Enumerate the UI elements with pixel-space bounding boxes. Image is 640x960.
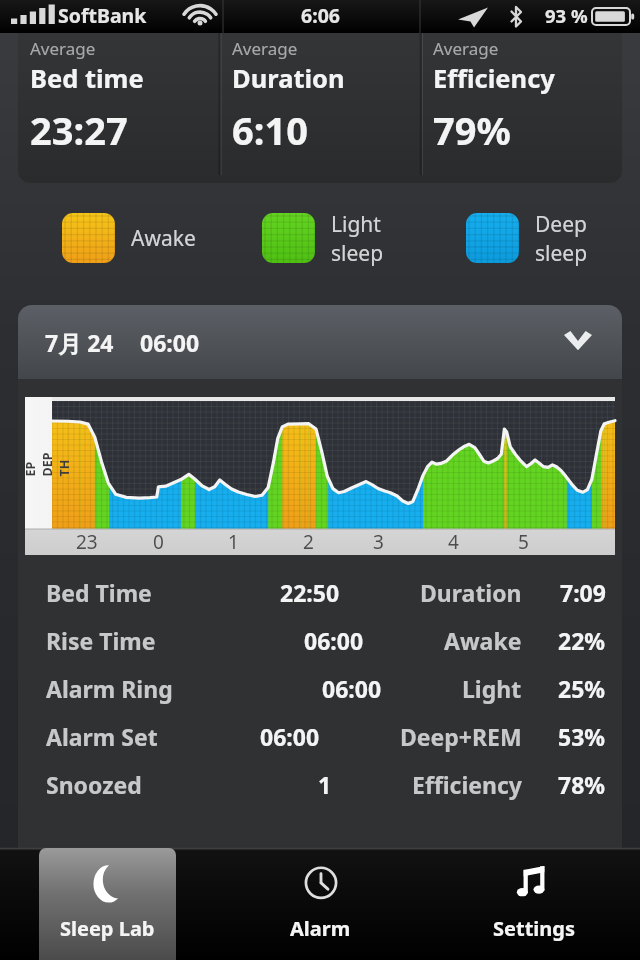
staticText: 1 — [318, 769, 332, 800]
staticText: SoftBank — [58, 2, 147, 29]
button[interactable]: 7月 24 — [18, 305, 622, 379]
staticText: Bed Time — [46, 577, 152, 608]
staticText: 25% — [558, 673, 606, 704]
staticText: Alarm Ring — [46, 673, 173, 704]
staticText: 06:00 — [140, 327, 200, 358]
staticText: Duration — [420, 577, 522, 608]
staticText: 7:09 — [560, 577, 606, 608]
staticText: Sleep Lab — [60, 915, 155, 942]
staticText: 22% — [558, 625, 606, 656]
button[interactable]: Average — [421, 33, 622, 183]
button[interactable]: Light — [262, 210, 384, 266]
staticText: 3 — [373, 529, 384, 555]
button[interactable]: Alarm Set — [18, 712, 622, 760]
button[interactable]: Rise Time — [18, 616, 622, 664]
staticText: Average — [30, 37, 96, 60]
button[interactable]: Alarm Ring — [18, 664, 622, 712]
staticText: 6:06 — [301, 2, 340, 29]
staticText: Alarm Set — [46, 721, 158, 752]
staticText: Average — [433, 37, 499, 60]
staticText: 78% — [558, 769, 606, 800]
staticText: sleep — [535, 239, 588, 266]
staticText: 1 — [228, 529, 239, 555]
staticText: 0 — [153, 529, 164, 555]
staticText: Duration — [232, 61, 345, 96]
staticText: 06:00 — [260, 721, 320, 752]
staticText: 93 % — [545, 3, 588, 28]
button[interactable]: Average — [18, 33, 220, 183]
staticText: 7月 24 — [45, 327, 114, 358]
staticText: Awake — [131, 224, 196, 253]
staticText: Deep — [535, 210, 587, 239]
staticText: 6:10 — [232, 104, 308, 156]
staticText: sleep — [331, 239, 384, 266]
button[interactable]: Sleep Lab — [39, 848, 176, 960]
staticText: Efficiency — [433, 61, 555, 96]
staticText: Light — [462, 673, 522, 704]
staticText: Settings — [493, 915, 575, 942]
button[interactable]: Deep — [466, 210, 588, 266]
staticText: Snoozed — [46, 769, 142, 800]
staticText: Rise Time — [46, 625, 156, 656]
staticText: 2 — [303, 529, 314, 555]
button[interactable]: Average — [220, 33, 421, 183]
staticText: 23:27 — [30, 104, 128, 156]
button[interactable]: Awake — [62, 210, 196, 266]
staticText: 06:00 — [304, 625, 364, 656]
button[interactable]: Snoozed — [18, 760, 622, 808]
staticText: Awake — [444, 625, 522, 656]
staticText: Alarm — [290, 915, 351, 942]
staticText: Average — [232, 37, 298, 60]
other: Expand details — [564, 331, 592, 353]
staticText: Bed time — [30, 61, 144, 96]
staticText: 53% — [558, 721, 606, 752]
staticText: 79% — [433, 104, 511, 156]
button[interactable]: Alarm — [252, 848, 389, 960]
staticText: 23 — [76, 529, 98, 555]
staticText: 22:50 — [280, 577, 340, 608]
staticText: Deep+REM — [400, 721, 522, 752]
staticText: 5 — [518, 529, 529, 555]
button[interactable]: Settings — [465, 848, 602, 960]
staticText: Light — [331, 210, 381, 239]
button[interactable]: Bed Time — [18, 568, 622, 616]
staticText: SLEEP DEPTH — [18, 449, 72, 476]
staticText: 06:00 — [322, 673, 382, 704]
staticText: Efficiency — [412, 769, 522, 800]
staticText: 4 — [448, 529, 459, 555]
